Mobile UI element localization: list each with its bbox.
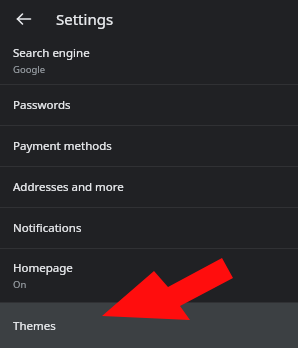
button[interactable]: Search engine — [0, 37, 298, 84]
staticText: Payment methods — [13, 138, 112, 154]
button[interactable]: Notifications — [0, 208, 298, 248]
staticText: Passwords — [13, 97, 71, 113]
staticText: Homepage — [13, 260, 73, 276]
button[interactable]: Homepage — [0, 249, 298, 302]
button[interactable]: Themes — [0, 303, 298, 348]
staticText: On — [13, 278, 27, 291]
staticText: Themes — [13, 318, 56, 334]
button[interactable]: Back — [10, 5, 38, 33]
staticText: Addresses and more — [13, 179, 124, 195]
button[interactable]: Addresses and more — [0, 167, 298, 207]
staticText: Google — [13, 63, 46, 76]
staticText: Notifications — [13, 220, 82, 236]
button[interactable]: Passwords — [0, 85, 298, 125]
button[interactable]: Payment methods — [0, 126, 298, 166]
staticText: Settings — [56, 9, 114, 29]
staticText: Search engine — [13, 45, 90, 61]
